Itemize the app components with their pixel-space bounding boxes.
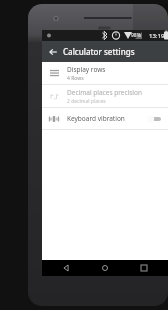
- staticText: Calculator settings: [63, 46, 135, 57]
- button[interactable]: Keyboard vibration: [42, 108, 168, 129]
- button[interactable]: Decimal places precision: [42, 85, 168, 107]
- button[interactable]: Back: [42, 41, 63, 62]
- staticText: 98%: [131, 32, 141, 39]
- button[interactable]: Recent apps: [129, 260, 159, 276]
- staticText: Keyboard vibration: [67, 114, 125, 123]
- button[interactable]: Keyboard vibration toggle: [146, 114, 162, 124]
- staticText: 4 Rows: [67, 75, 84, 82]
- staticText: 2 decimal places: [67, 98, 106, 105]
- button[interactable]: Display rows: [42, 62, 168, 84]
- button[interactable]: Back: [51, 260, 81, 276]
- staticText: Decimal places precision: [67, 88, 142, 97]
- button[interactable]: Home: [90, 260, 120, 276]
- staticText: 13:19: [149, 32, 165, 40]
- staticText: Display rows: [67, 65, 106, 74]
